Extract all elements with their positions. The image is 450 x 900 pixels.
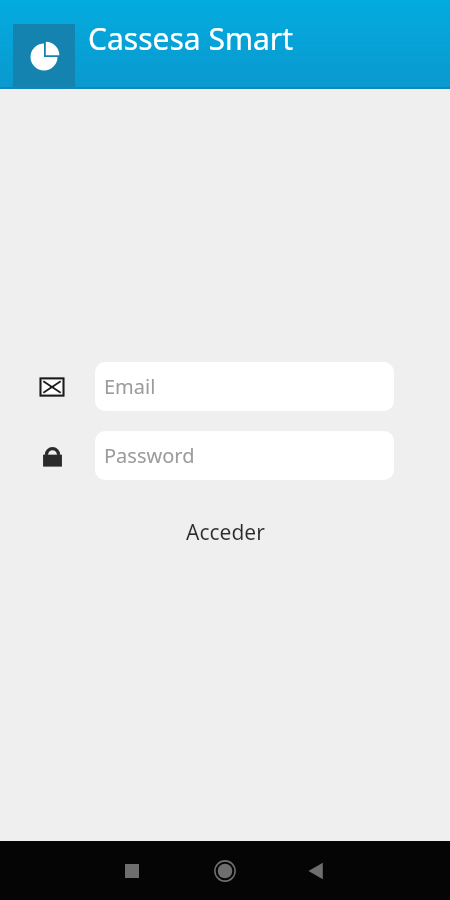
other: Password [37, 441, 67, 471]
button[interactable]: Home [202, 848, 248, 894]
staticText: Cassesa Smart [88, 18, 294, 59]
staticText: Email [104, 373, 156, 400]
button[interactable]: Recents [109, 848, 155, 894]
button[interactable]: Acceder [0, 512, 450, 552]
button[interactable]: Email [95, 362, 394, 411]
button[interactable]: Password [95, 431, 394, 480]
button[interactable]: Back [293, 848, 339, 894]
staticText: Password [104, 442, 195, 469]
other: Email [37, 372, 67, 402]
staticText: Acceder [186, 518, 265, 547]
button[interactable]: App logo [13, 24, 75, 89]
